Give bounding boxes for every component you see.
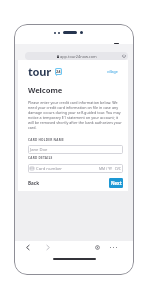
staticText: Jane Doe — [30, 147, 48, 153]
button[interactable]: Page info — [95, 245, 100, 250]
button[interactable]: Jane Doe — [28, 145, 123, 154]
button[interactable]: Forward — [46, 244, 50, 251]
button[interactable]: Next — [109, 178, 123, 188]
staticText: CARD DETAILS — [28, 156, 53, 160]
button[interactable]: Reload — [122, 54, 126, 58]
staticText: Welcome — [28, 85, 63, 95]
staticText: app.tour24now.com — [60, 54, 97, 59]
staticText: Please enter your credit card informatio… — [28, 100, 123, 130]
staticText: MM / YY CVC — [99, 166, 121, 171]
staticText: Next — [111, 180, 122, 186]
button[interactable]: Card number — [28, 164, 123, 173]
button[interactable]: village — [107, 69, 118, 74]
staticText: CARD HOLDER NAME — [28, 138, 64, 142]
button[interactable]: Back — [28, 179, 40, 187]
button[interactable]: More options — [110, 245, 117, 250]
button[interactable]: Back — [26, 244, 30, 251]
staticText: Back — [28, 180, 40, 186]
button[interactable]: tour — [28, 64, 62, 79]
button[interactable]: app.tour24now.com — [25, 52, 128, 60]
staticText: 24 — [56, 69, 61, 74]
staticText: tour — [28, 64, 51, 79]
staticText: Card number — [36, 166, 63, 172]
